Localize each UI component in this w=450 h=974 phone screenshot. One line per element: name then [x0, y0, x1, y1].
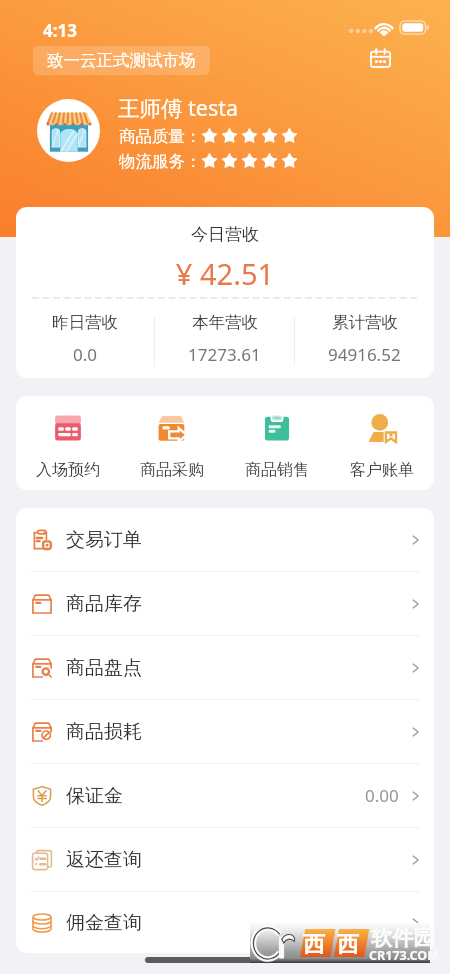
- staticText: 4:13: [43, 19, 77, 42]
- button[interactable]: 商品盘点: [16, 636, 434, 699]
- button[interactable]: 入场预约: [16, 396, 120, 490]
- staticText: 商品盘点: [66, 656, 142, 680]
- staticText: ¥ 42.51: [16, 254, 434, 293]
- button[interactable]: 商品采购: [120, 396, 224, 490]
- staticText: 软件园: [371, 925, 434, 951]
- staticText: 本年营收: [192, 312, 258, 333]
- staticText: 王师傅 testa: [118, 93, 239, 122]
- staticText: 0.00: [365, 784, 399, 807]
- staticText: 西: [337, 931, 359, 959]
- staticText: 94916.52: [328, 343, 401, 362]
- staticText: 返还查询: [66, 848, 142, 872]
- staticText: 佣金查询: [66, 911, 142, 935]
- staticText: 累计营收: [332, 312, 398, 333]
- staticText: 17273.61: [188, 343, 261, 362]
- button[interactable]: Calendar: [364, 42, 396, 74]
- staticText: 商品质量：: [119, 126, 202, 145]
- staticText: 入场预约: [36, 460, 100, 480]
- button[interactable]: 商品库存: [16, 572, 434, 635]
- button[interactable]: 返还查询: [16, 828, 434, 891]
- staticText: 客户账单: [350, 460, 414, 480]
- button[interactable]: 交易订单: [16, 508, 434, 571]
- staticText: 昨日营收: [52, 312, 118, 333]
- button[interactable]: 客户账单: [329, 396, 434, 490]
- button[interactable]: 佣金查询: [16, 892, 434, 953]
- staticText: 商品销售: [245, 460, 309, 480]
- staticText: 西: [303, 931, 325, 959]
- staticText: CR173.COM: [369, 947, 440, 964]
- button[interactable]: 商品销售: [224, 396, 329, 490]
- staticText: 商品采购: [140, 460, 204, 480]
- staticText: 0.0: [73, 343, 98, 362]
- staticText: 保证金: [66, 784, 123, 808]
- button[interactable]: 致一云正式测试市场: [33, 46, 210, 75]
- button[interactable]: 商品损耗: [16, 700, 434, 763]
- staticText: 交易订单: [66, 528, 142, 552]
- button[interactable]: 保证金: [16, 764, 434, 827]
- staticText: 致一云正式测试市场: [47, 50, 196, 71]
- staticText: 商品损耗: [66, 720, 142, 744]
- staticText: 物流服务：: [119, 151, 202, 170]
- staticText: 今日营收: [16, 224, 434, 245]
- staticText: 商品库存: [66, 592, 142, 616]
